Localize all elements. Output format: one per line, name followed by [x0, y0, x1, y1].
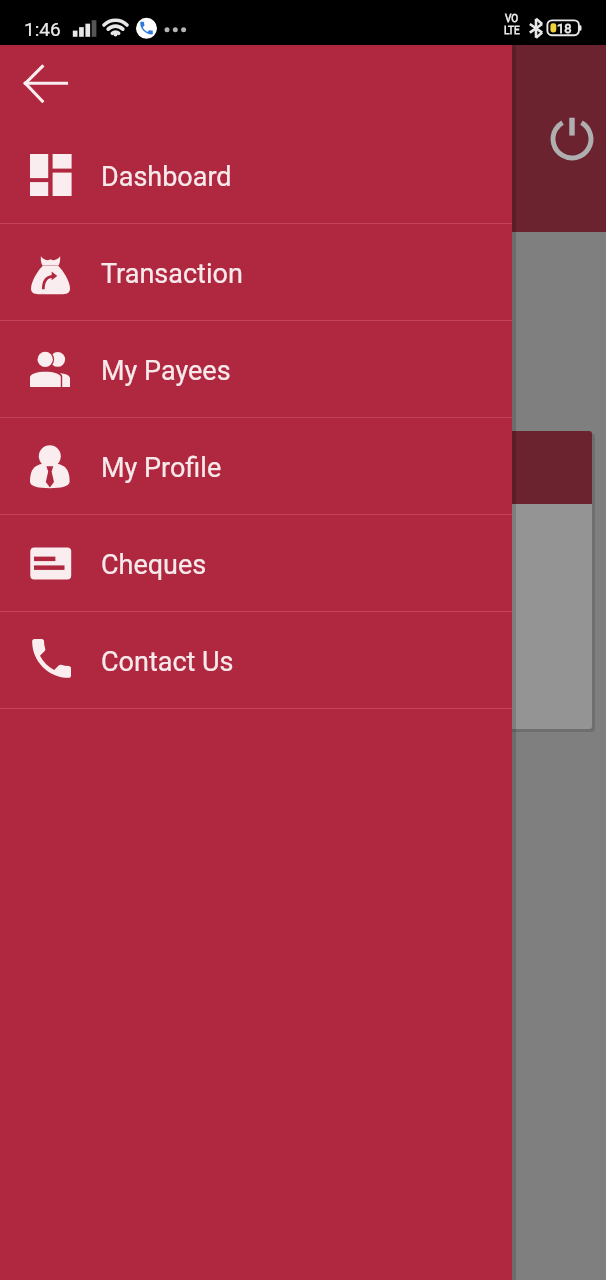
staticText: My Profile [101, 452, 222, 484]
button[interactable]: My Profile [0, 418, 512, 515]
button[interactable]: Back [8, 45, 84, 121]
button[interactable]: Power [546, 113, 598, 165]
staticText: Cheques [101, 549, 207, 581]
button[interactable]: Cheques [0, 515, 512, 612]
staticText: Dashboard [101, 161, 232, 193]
button[interactable]: Transaction [0, 224, 512, 321]
staticText: Transaction [101, 258, 243, 290]
staticText: LTE [504, 25, 520, 37]
staticText: VO [505, 13, 519, 25]
staticText: My Payees [101, 355, 231, 387]
button[interactable]: Dashboard [0, 127, 512, 224]
button[interactable]: Contact Us [0, 612, 512, 709]
staticText: 18 [557, 21, 572, 36]
button[interactable]: My Payees [0, 321, 512, 418]
staticText: 1:46 [24, 18, 61, 40]
staticText: Contact Us [101, 646, 234, 678]
